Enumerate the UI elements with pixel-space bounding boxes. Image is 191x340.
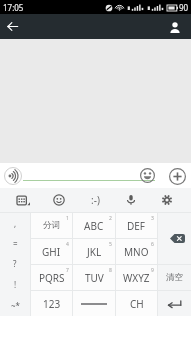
staticText: 17:05	[3, 2, 24, 13]
button[interactable]: !	[0, 274, 30, 295]
staticText: 5	[109, 241, 112, 248]
button[interactable]: ,	[0, 213, 30, 233]
button[interactable]: ABC	[73, 213, 115, 238]
staticText: 9	[151, 267, 154, 274]
button[interactable]: =	[0, 233, 30, 253]
button[interactable]: 123	[31, 291, 72, 316]
button[interactable]: TUV	[73, 265, 115, 290]
button[interactable]: CH	[116, 291, 157, 316]
staticText: 8	[109, 267, 112, 274]
staticText: 3	[151, 215, 154, 222]
staticText: WXYZ	[123, 271, 150, 285]
button[interactable]: Enter	[158, 291, 191, 316]
staticText: 90	[179, 2, 189, 13]
staticText: =	[13, 238, 18, 249]
button[interactable]: GHI	[31, 239, 72, 264]
button[interactable]: text	[77, 188, 113, 212]
button[interactable]: DEF	[116, 213, 157, 238]
button[interactable]: JKL	[73, 239, 115, 264]
staticText: JKL	[87, 245, 102, 259]
button[interactable]: Back	[0, 14, 25, 39]
staticText: CH	[130, 297, 144, 311]
button[interactable]: Contact profile	[165, 17, 185, 37]
staticText: 7	[66, 267, 69, 274]
button[interactable]: 分词	[31, 213, 72, 238]
staticText: 分词	[43, 220, 60, 231]
staticText: ,	[14, 218, 17, 229]
staticText: 2	[109, 215, 112, 222]
button[interactable]: 清空	[158, 265, 191, 290]
staticText: TUV	[85, 271, 104, 285]
staticText: 123	[43, 297, 61, 311]
staticText: ~*	[11, 300, 20, 311]
staticText: 1	[66, 215, 69, 222]
button[interactable]: Voice input	[4, 167, 22, 185]
button[interactable]: PQRS	[31, 265, 72, 290]
button[interactable]: Emoji	[139, 167, 156, 184]
button[interactable]	[73, 291, 115, 316]
staticText: DEF	[127, 219, 146, 233]
staticText: 清空	[166, 272, 183, 283]
staticText: 4	[66, 241, 69, 248]
button[interactable]: Add attachment	[168, 167, 186, 185]
button[interactable]: mic	[113, 188, 149, 212]
staticText: MNO	[124, 245, 149, 259]
staticText: GHI	[42, 245, 61, 259]
staticText: ?	[13, 258, 17, 269]
button[interactable]: Delete	[158, 213, 191, 264]
button[interactable]: ?	[0, 253, 30, 274]
staticText: PQRS	[39, 271, 65, 285]
button[interactable]: WXYZ	[116, 265, 157, 290]
staticText: :-)	[91, 193, 100, 207]
staticText: ABC	[84, 219, 104, 233]
button[interactable]: smile	[41, 188, 77, 212]
staticText: !	[14, 279, 17, 290]
button[interactable]: ~*	[0, 295, 30, 316]
staticText: 6	[151, 241, 154, 248]
button[interactable]: gear	[149, 188, 185, 212]
button[interactable]: MNO	[116, 239, 157, 264]
button[interactable]: kbd	[6, 188, 41, 212]
